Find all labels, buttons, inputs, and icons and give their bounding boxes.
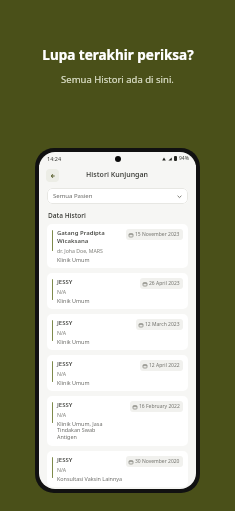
staticText: 12 March 2023 [145,321,180,328]
button[interactable]: JESSY [47,355,188,391]
staticText: JESSY [57,360,73,368]
button[interactable]: Gatang Pradipta Wicaksana [47,224,188,268]
staticText: 12 April 2022 [149,362,180,369]
staticText: Data Histori [48,211,86,220]
button[interactable]: JESSY [47,396,188,446]
staticText: N/A [57,329,67,336]
staticText: Histori Kunjungan [86,170,149,180]
staticText: JESSY [57,401,73,409]
staticText: 94% [179,155,189,162]
staticText: Gatang Pradipta Wicaksana [57,229,123,245]
staticText: N/A [57,288,67,295]
staticText: JESSY [57,278,73,286]
staticText: N/A [57,466,67,473]
button[interactable]: Back [46,169,59,182]
staticText: 14:24 [47,155,62,162]
staticText: N/A [57,411,67,418]
staticText: 15 November 2023 [135,231,180,238]
staticText: 16 February 2022 [139,403,180,410]
staticText: N/A [57,370,67,377]
staticText: Klinik Umum [57,256,90,263]
button[interactable]: JESSY [47,451,188,487]
staticText: Klinik Umum, Jasa Tindakan Swab Antigen [57,420,127,441]
staticText: Lupa terakhir periksa? [42,46,194,64]
staticText: Semua Histori ada di sini. [61,73,174,86]
staticText: Konsultasi Vaksin Lainnya [57,475,122,482]
button[interactable]: Semua Pasien [47,188,188,204]
staticText: Semua Pasien [53,192,93,200]
staticText: 26 April 2023 [149,280,180,287]
button[interactable]: JESSY [47,314,188,350]
staticText: 30 November 2020 [135,458,180,465]
staticText: JESSY [57,319,73,327]
staticText: dr. Joha Doe, MARS [57,247,103,254]
staticText: Klinik Umum [57,379,90,386]
staticText: Klinik Umum [57,338,90,345]
button[interactable]: JESSY [47,273,188,309]
staticText: JESSY [57,456,73,464]
staticText: Klinik Umum [57,297,90,304]
